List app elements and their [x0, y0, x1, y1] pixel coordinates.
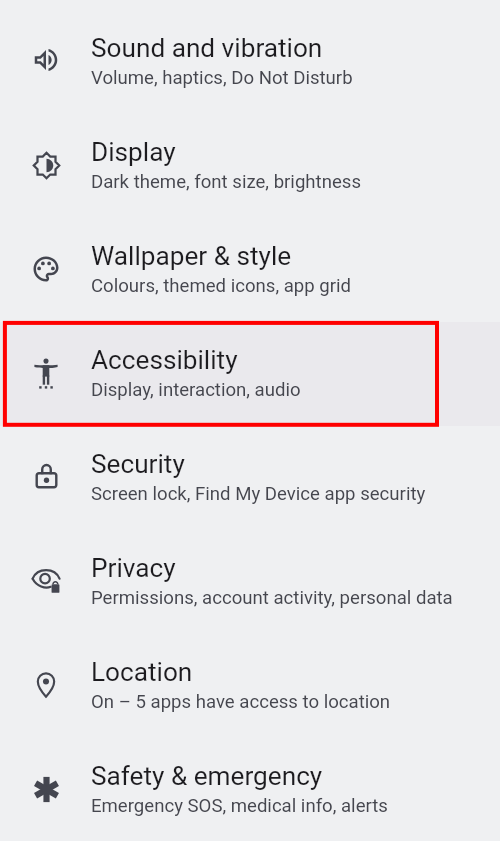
staticText: Display, interaction, audio — [91, 379, 301, 401]
staticText: Accessibility — [91, 345, 238, 376]
other: Wallpaper & style — [0, 218, 92, 322]
staticText: Emergency SOS, medical info, alerts — [91, 795, 388, 817]
other: Accessibility — [0, 322, 92, 426]
other: Security — [0, 426, 92, 530]
staticText: Location — [91, 657, 193, 688]
button[interactable]: Safety & emergency — [0, 738, 500, 841]
other: Sound and vibration — [0, 10, 92, 114]
staticText: Permissions, account activity, personal … — [91, 587, 453, 609]
staticText: Safety & emergency — [91, 761, 323, 792]
staticText: Dark theme, font size, brightness — [91, 171, 361, 193]
staticText: Screen lock, Find My Device app security — [91, 483, 426, 505]
button[interactable]: Privacy — [0, 530, 500, 634]
button[interactable]: Security — [0, 426, 500, 530]
staticText: Display — [91, 137, 176, 168]
staticText: Security — [91, 449, 185, 480]
staticText: On – 5 apps have access to location — [91, 691, 391, 713]
staticText: Wallpaper & style — [91, 241, 292, 272]
other: Safety & emergency — [0, 738, 92, 841]
other: Privacy — [0, 530, 92, 634]
button[interactable]: Location — [0, 634, 500, 738]
other: Location — [0, 634, 92, 738]
staticText: Privacy — [91, 553, 176, 584]
button[interactable]: Accessibility — [0, 322, 500, 426]
button[interactable]: Display — [0, 114, 500, 218]
staticText: Colours, themed icons, app grid — [91, 275, 352, 297]
staticText: Volume, haptics, Do Not Disturb — [91, 67, 353, 89]
button[interactable]: Wallpaper & style — [0, 218, 500, 322]
button[interactable]: Sound and vibration — [0, 10, 500, 114]
other: Display — [0, 114, 92, 218]
staticText: Sound and vibration — [91, 33, 323, 64]
